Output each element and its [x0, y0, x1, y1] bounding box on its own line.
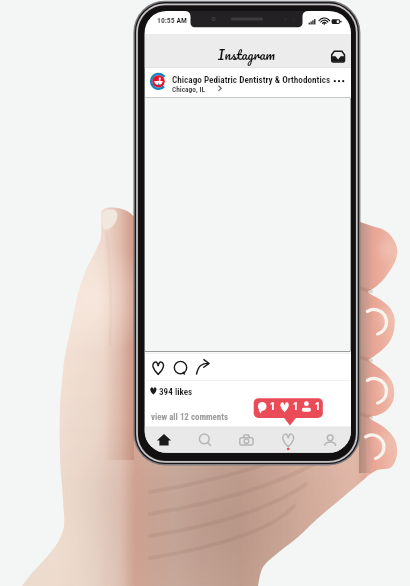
staticText: Chicago, IL — [172, 85, 206, 94]
staticText: 394 likes — [159, 387, 193, 398]
staticText: 1 — [270, 401, 276, 413]
staticText: Instagram — [218, 43, 275, 66]
staticText: 10:55 AM — [157, 16, 187, 25]
staticText: 1 — [293, 401, 299, 413]
staticText: view all 12 comments — [151, 412, 229, 422]
staticText: Chicago Pediatric Dentistry & Orthodonti… — [172, 74, 331, 85]
staticText: 1 — [315, 401, 321, 413]
